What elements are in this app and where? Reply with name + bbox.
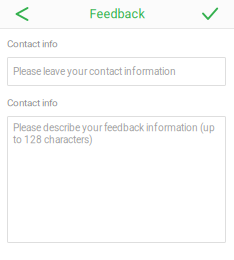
button[interactable]: Back <box>8 0 36 28</box>
staticText: Please leave your contact information <box>13 66 176 77</box>
staticText: Feedback <box>89 7 144 21</box>
button[interactable]: Submit feedback <box>196 0 224 28</box>
staticText: Contact info <box>7 97 58 109</box>
button[interactable]: Please describe your feedback informatio… <box>7 116 226 243</box>
staticText: Please describe your feedback informatio… <box>13 122 215 146</box>
staticText: Contact info <box>7 38 58 50</box>
button[interactable]: Please leave your contact information <box>7 57 226 86</box>
